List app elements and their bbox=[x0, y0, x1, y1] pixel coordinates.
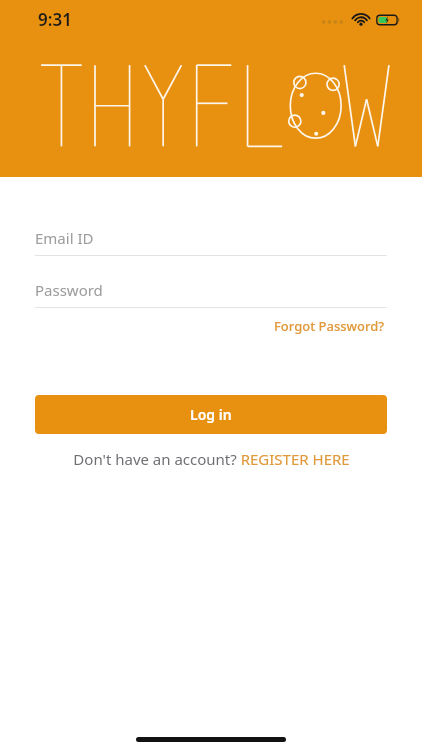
staticText: Forgot Password? bbox=[274, 317, 385, 335]
staticText: Don't have an account? REGISTER HERE bbox=[73, 449, 350, 469]
staticText: 9:31 bbox=[38, 8, 72, 31]
button[interactable]: Don't have an account? REGISTER HERE bbox=[67, 445, 356, 473]
button[interactable]: Log in bbox=[35, 395, 387, 434]
button[interactable]: Forgot Password? bbox=[272, 314, 387, 338]
staticText: Email ID bbox=[35, 228, 94, 248]
staticText: Log in bbox=[190, 405, 232, 424]
staticText: Password bbox=[35, 280, 103, 300]
button[interactable]: Password bbox=[35, 280, 387, 308]
button[interactable]: Email ID bbox=[35, 228, 387, 256]
